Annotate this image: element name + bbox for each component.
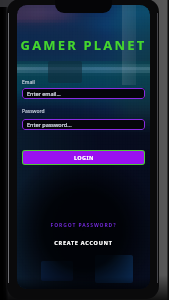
button[interactable]: LOGIN	[23, 151, 144, 164]
staticText: Enter email...	[27, 90, 61, 97]
staticText: Email	[22, 79, 35, 86]
button[interactable]: CREATE ACCOUNT	[17, 239, 150, 246]
button[interactable]: Enter email...	[22, 88, 145, 99]
staticText: Enter password...	[27, 121, 72, 128]
staticText: LOGIN	[74, 154, 94, 161]
button[interactable]: Enter password...	[22, 119, 145, 130]
staticText: Password	[22, 108, 45, 115]
button[interactable]: FORGOT PASSWORD?	[17, 222, 150, 229]
staticText: GAMER PLANET	[17, 36, 150, 54]
